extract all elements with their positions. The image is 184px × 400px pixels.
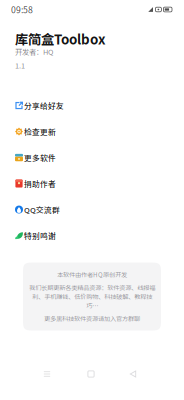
button[interactable]: 检查更新 (0, 118, 184, 144)
button[interactable]: Home (73, 363, 109, 385)
staticText: 我们长期更新各类精品资源：软件资源、线报福利、手机赚钱、低价购物、科技破解、教程… (29, 283, 155, 310)
staticText: 开发者：HQ (15, 46, 53, 57)
staticText: 本软件由作者HQ原创开发 (57, 270, 127, 279)
staticText: 分享给好友 (24, 100, 64, 111)
staticText: 特别鸣谢 (24, 230, 56, 241)
button[interactable]: QQ交流群 (0, 196, 184, 222)
button[interactable]: 分享给好友 (0, 92, 184, 118)
staticText: 1.1 (15, 60, 25, 70)
staticText: 09:58 (11, 3, 33, 16)
staticText: 更多黑科技软件资源请加入官方群聊 (44, 314, 140, 323)
staticText: 库简盒Toolbox (15, 29, 105, 48)
staticText: 更多软件 (24, 152, 56, 163)
button[interactable]: 捐助作者 (0, 170, 184, 196)
button[interactable]: Back (115, 363, 151, 385)
staticText: 检查更新 (24, 126, 56, 137)
button[interactable]: 特别鸣谢 (0, 222, 184, 248)
staticText: QQ交流群 (24, 204, 60, 215)
button[interactable]: 更多软件 (0, 144, 184, 170)
staticText: 捐助作者 (24, 178, 56, 189)
button[interactable]: Recent apps (29, 363, 65, 385)
